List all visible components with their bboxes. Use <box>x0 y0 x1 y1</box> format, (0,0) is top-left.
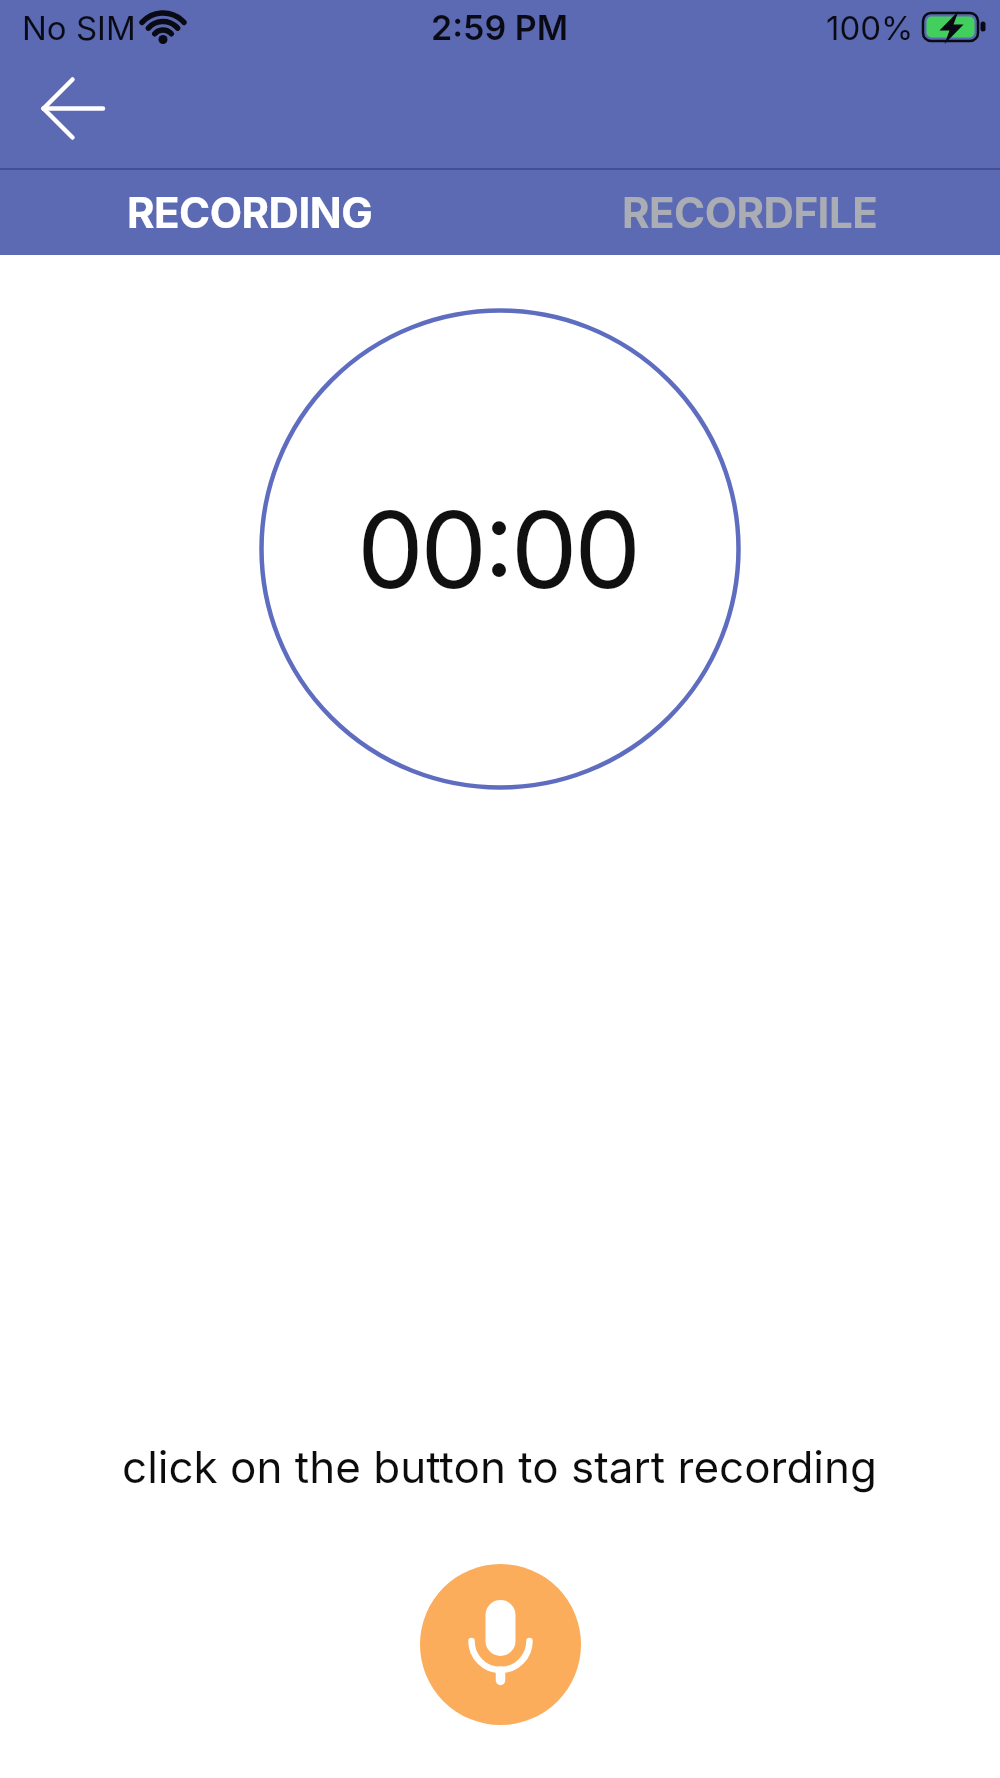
staticText: 100% <box>826 8 914 48</box>
staticText: click on the button to start recording <box>122 1440 878 1493</box>
button[interactable]: RECORDING <box>0 170 500 255</box>
staticText: No SIM <box>22 8 136 48</box>
button[interactable] <box>20 62 115 154</box>
button[interactable] <box>420 1564 581 1725</box>
staticText: 00:00 <box>357 485 638 613</box>
staticText: 2:59 PM <box>431 7 569 48</box>
staticText: RECORDING <box>127 187 373 238</box>
staticText: RECORDFILE <box>622 187 878 238</box>
button[interactable]: RECORDFILE <box>500 170 1000 255</box>
